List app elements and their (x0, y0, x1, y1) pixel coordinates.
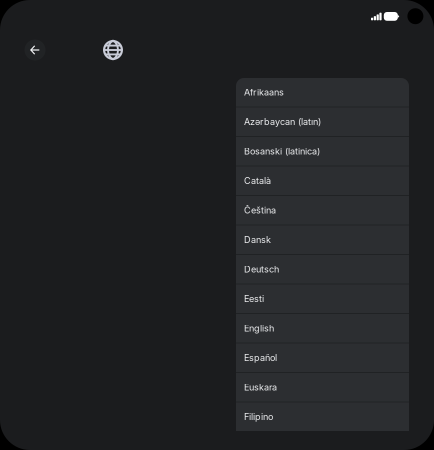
staticText: Español (244, 352, 277, 363)
button[interactable]: Català (236, 166, 409, 196)
button[interactable]: Afrikaans (236, 78, 409, 107)
button[interactable]: Bosanski (latinica) (236, 137, 409, 166)
staticText: Català (244, 175, 271, 186)
button[interactable]: Language (98, 35, 128, 65)
staticText: Bosanski (latinica) (244, 146, 320, 157)
staticText: Filipino (244, 411, 273, 422)
staticText: Afrikaans (244, 87, 284, 98)
staticText: English (244, 323, 274, 334)
staticText: Azərbaycan (latın) (244, 116, 321, 127)
button[interactable]: Filipino (236, 402, 409, 432)
button[interactable]: Eesti (236, 284, 409, 314)
button[interactable]: Español (236, 343, 409, 373)
staticText: Dansk (244, 234, 271, 245)
button[interactable]: Back (20, 35, 50, 65)
button[interactable]: Azərbaycan (latın) (236, 107, 409, 137)
staticText: Čeština (244, 205, 276, 216)
button[interactable]: Dansk (236, 225, 409, 255)
staticText: Euskara (244, 382, 277, 393)
button[interactable]: Deutsch (236, 255, 409, 284)
button[interactable]: Čeština (236, 196, 409, 225)
staticText: Eesti (244, 293, 264, 304)
staticText: Deutsch (244, 264, 279, 275)
button[interactable]: English (236, 314, 409, 343)
button[interactable]: Euskara (236, 373, 409, 402)
